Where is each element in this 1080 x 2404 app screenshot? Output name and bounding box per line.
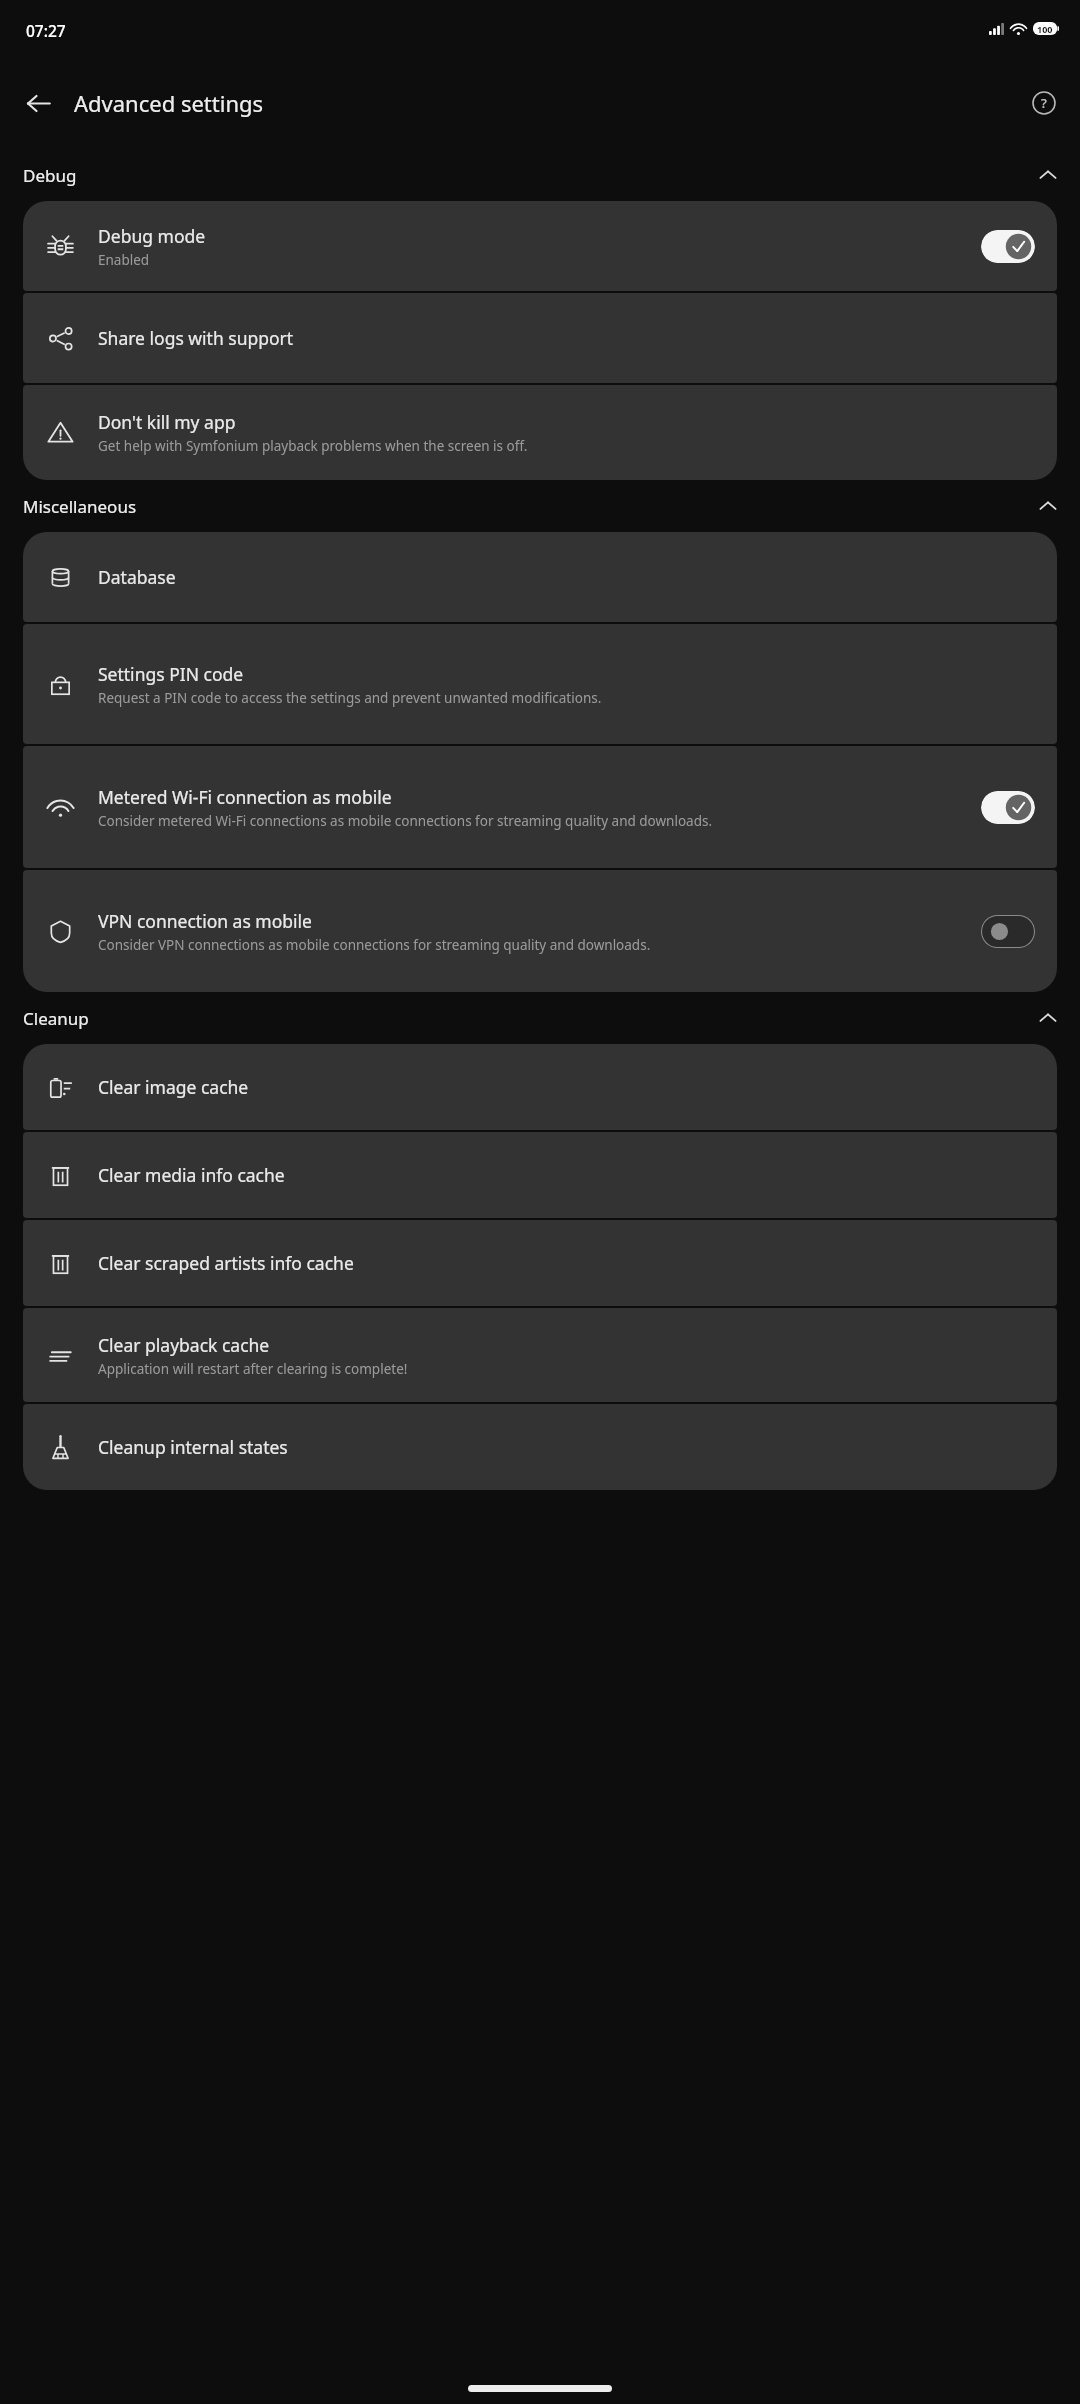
button[interactable]: Settings PIN code <box>23 624 1057 744</box>
staticText: Clear scraped artists info cache <box>98 1251 354 1275</box>
button[interactable]: Debug mode <box>23 201 1057 291</box>
staticText: Cleanup <box>23 1007 89 1030</box>
button[interactable]: Cleanup internal states <box>23 1404 1057 1490</box>
button[interactable]: Toggle Metered Wi-Fi connection as mobil… <box>981 791 1035 824</box>
staticText: Metered Wi-Fi connection as mobile <box>98 785 392 809</box>
staticText: Clear playback cache <box>98 1333 270 1357</box>
button[interactable]: Back <box>10 75 66 131</box>
staticText: Database <box>98 565 176 589</box>
staticText: Request a PIN code to access the setting… <box>98 689 602 707</box>
staticText: Application will restart after clearing … <box>98 1360 408 1378</box>
staticText: Cleanup internal states <box>98 1435 288 1459</box>
button[interactable]: Clear image cache <box>23 1044 1057 1130</box>
button[interactable]: Database <box>23 532 1057 622</box>
button[interactable]: Clear media info cache <box>23 1132 1057 1218</box>
staticText: Consider metered Wi-Fi connections as mo… <box>98 812 713 830</box>
button[interactable]: Don't kill my app <box>23 385 1057 480</box>
staticText: Clear image cache <box>98 1075 249 1099</box>
staticText: Miscellaneous <box>23 495 137 518</box>
button[interactable]: Cleanup <box>0 992 1080 1044</box>
staticText: Debug <box>23 164 77 187</box>
button[interactable]: Clear playback cache <box>23 1308 1057 1402</box>
staticText: Settings PIN code <box>98 662 244 686</box>
staticText: Don't kill my app <box>98 410 236 434</box>
staticText: VPN connection as mobile <box>98 909 312 933</box>
button[interactable]: Toggle VPN connection as mobile <box>981 915 1035 948</box>
staticText: Share logs with support <box>98 326 294 350</box>
staticText: 07:27 <box>26 20 66 41</box>
staticText: Enabled <box>98 251 150 269</box>
button[interactable]: VPN connection as mobile <box>23 870 1057 992</box>
staticText: Debug mode <box>98 224 206 248</box>
button[interactable]: Toggle Debug mode <box>981 230 1035 263</box>
staticText: Clear media info cache <box>98 1163 285 1187</box>
staticText: Advanced settings <box>74 88 264 118</box>
button[interactable]: Metered Wi-Fi connection as mobile <box>23 746 1057 868</box>
button[interactable]: Share logs with support <box>23 293 1057 383</box>
staticText: ? <box>1041 94 1047 112</box>
button[interactable]: Help <box>1018 77 1070 129</box>
button[interactable]: Debug <box>0 149 1080 201</box>
button[interactable]: Miscellaneous <box>0 480 1080 532</box>
staticText: Get help with Symfonium playback problem… <box>98 437 528 455</box>
staticText: 100 <box>1037 23 1053 35</box>
button[interactable]: Clear scraped artists info cache <box>23 1220 1057 1306</box>
staticText: Consider VPN connections as mobile conne… <box>98 936 651 954</box>
